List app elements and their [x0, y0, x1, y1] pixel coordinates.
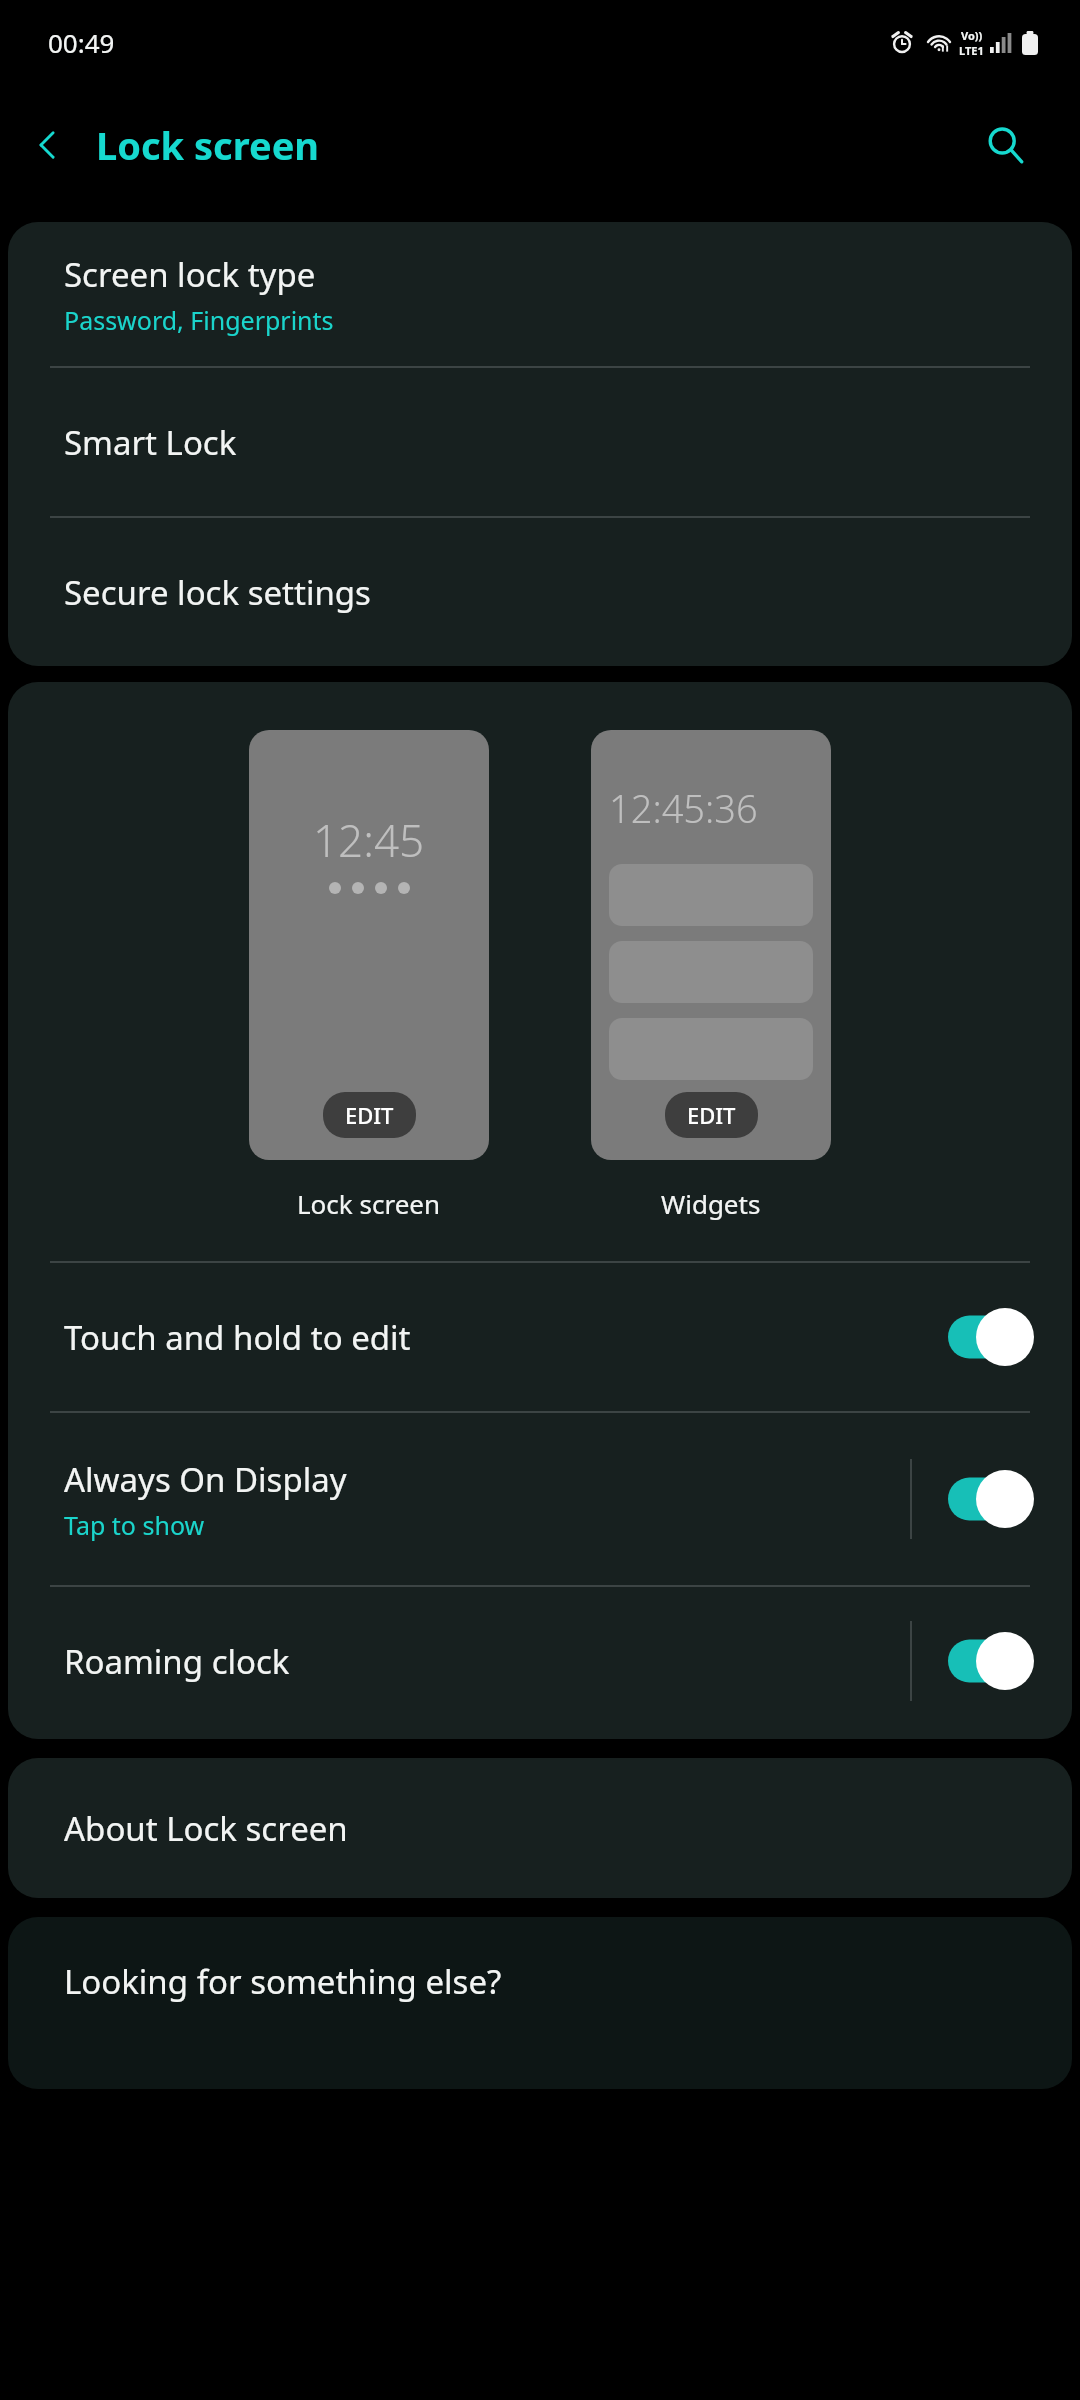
- button[interactable]: Secure lock settings: [8, 518, 1072, 666]
- staticText: Lock screen: [297, 1186, 441, 1221]
- staticText: Secure lock settings: [64, 570, 371, 615]
- button[interactable]: Screen lock type: [8, 222, 1072, 366]
- staticText: Widgets: [661, 1186, 761, 1221]
- staticText: EDIT: [345, 1100, 394, 1130]
- staticText: 12:45: [313, 810, 425, 870]
- staticText: Password, Fingerprints: [64, 303, 334, 337]
- button[interactable]: Always On Display: [8, 1413, 1072, 1585]
- button[interactable]: Looking for something else?: [8, 1917, 1072, 2089]
- staticText: Vo)): [961, 28, 983, 43]
- staticText: 00:49: [48, 25, 115, 60]
- staticText: Smart Lock: [64, 420, 237, 465]
- button[interactable]: [948, 1618, 1034, 1704]
- button[interactable]: Roaming clock: [8, 1587, 1072, 1735]
- staticText: Looking for something else?: [64, 1959, 502, 2004]
- button[interactable]: About Lock screen: [8, 1758, 1072, 1898]
- button[interactable]: Smart Lock: [8, 368, 1072, 516]
- button[interactable]: Back: [0, 97, 96, 193]
- staticText: Screen lock type: [64, 252, 316, 297]
- button[interactable]: EDIT: [665, 1092, 758, 1138]
- button[interactable]: 12:45: [249, 730, 489, 1221]
- staticText: Always On Display: [64, 1457, 347, 1502]
- button[interactable]: Search: [960, 100, 1050, 190]
- button[interactable]: Touch and hold to edit: [8, 1263, 1072, 1411]
- staticText: Roaming clock: [64, 1639, 290, 1684]
- staticText: EDIT: [687, 1100, 736, 1130]
- staticText: About Lock screen: [64, 1806, 348, 1851]
- staticText: Tap to show: [64, 1508, 205, 1542]
- button[interactable]: [948, 1294, 1034, 1380]
- staticText: LTE1: [959, 43, 984, 58]
- staticText: Lock screen: [96, 119, 320, 171]
- button[interactable]: 12:45:36: [591, 730, 831, 1221]
- button[interactable]: EDIT: [323, 1092, 416, 1138]
- button[interactable]: [948, 1456, 1034, 1542]
- staticText: 12:45:36: [609, 782, 758, 834]
- staticText: Touch and hold to edit: [64, 1315, 411, 1360]
